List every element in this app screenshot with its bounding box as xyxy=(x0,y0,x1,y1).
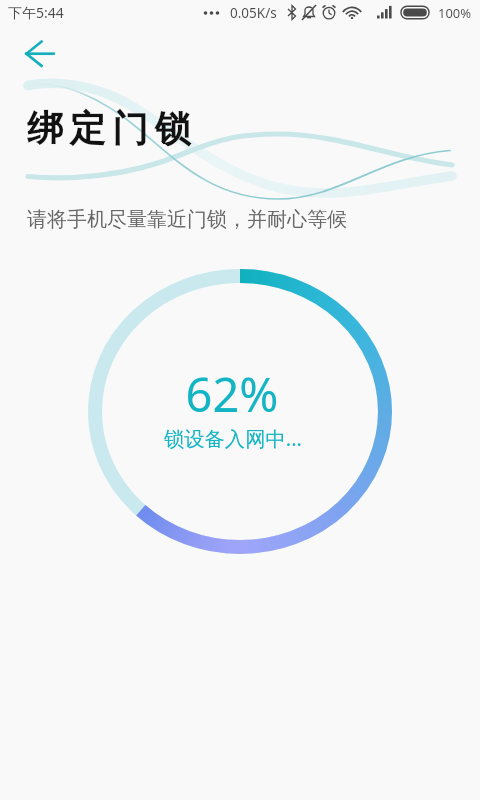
button[interactable]: Back xyxy=(14,28,68,80)
staticText: 下午5:44 xyxy=(8,3,64,22)
staticText: 绑定门锁 xyxy=(27,106,198,151)
staticText: 0.05K/s xyxy=(230,4,277,22)
staticText: 62% xyxy=(0,362,472,426)
staticText: 请将手机尽量靠近门锁，并耐心等候 xyxy=(27,207,347,232)
staticText: 100% xyxy=(438,4,472,22)
staticText: 锁设备入网中... xyxy=(0,424,473,452)
